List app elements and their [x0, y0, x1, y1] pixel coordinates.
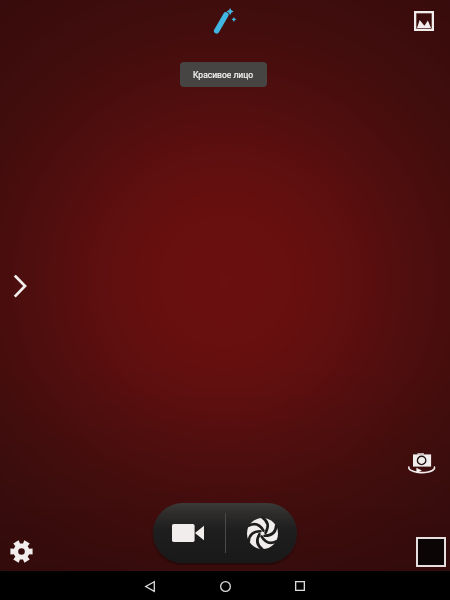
- button[interactable]: Switch camera: [399, 440, 443, 484]
- button[interactable]: Expand panel: [0, 264, 42, 308]
- button[interactable]: Back: [132, 572, 168, 600]
- button[interactable]: Gallery: [400, 0, 448, 45]
- button[interactable]: Last photo: [416, 537, 446, 567]
- staticText: Красивое лицо: [193, 70, 254, 80]
- button[interactable]: Take photo: [226, 503, 297, 563]
- button[interactable]: Home: [207, 572, 243, 600]
- button[interactable]: Settings: [0, 529, 43, 573]
- button[interactable]: Record video: [153, 503, 225, 563]
- button[interactable]: Recents: [282, 572, 318, 600]
- button[interactable]: Красивое лицо: [180, 62, 267, 87]
- button[interactable]: Beauty: [201, 0, 249, 45]
